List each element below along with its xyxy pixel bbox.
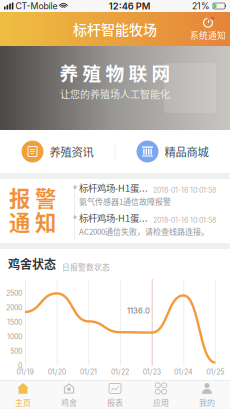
staticText: 主页 (15, 396, 31, 408)
staticText: 标杆智能牧场 (73, 19, 157, 39)
staticText: AC2000通信失败，请检查线路连接。 (79, 225, 209, 237)
staticText: 鸡舍 (61, 396, 77, 408)
staticText: 2018-01-16 10:01:58 (153, 186, 216, 194)
staticText: 01/22 (111, 368, 129, 376)
staticText: 500 (10, 347, 22, 355)
staticText: 养 殖 物 联 网 (59, 59, 170, 86)
staticText: 鸡舍状态 (8, 255, 56, 272)
staticText: 01/20 (48, 368, 66, 376)
staticText: 让您的养殖场人工智能化 (60, 87, 170, 101)
staticText: 系统通知 (190, 29, 226, 41)
staticText: 精品商城 (164, 143, 208, 160)
staticText: 12:46 PM (109, 0, 151, 12)
staticText: 01/21 (80, 368, 97, 376)
staticText: 1000 (7, 332, 22, 341)
staticText: 01/19 (16, 368, 33, 376)
button[interactable]: 鸡舍 (46, 380, 92, 409)
button[interactable]: 系统通知 (188, 12, 228, 46)
button[interactable]: 主页 (0, 380, 46, 409)
button[interactable]: 精品商城 (115, 130, 230, 173)
staticText: 2018-01-16 10:01:58 (153, 216, 216, 224)
staticText: 01/25 (206, 368, 224, 376)
button[interactable]: 应用 (138, 380, 184, 409)
staticText: 21% (192, 1, 210, 11)
staticText: 应用 (153, 396, 169, 408)
button[interactable]: 标杆鸡场-H1蛋... (71, 211, 230, 241)
staticText: 1500 (7, 318, 22, 326)
button[interactable]: 报表 (92, 380, 138, 409)
staticText: 01/24 (174, 368, 193, 376)
staticText: 通知 (9, 206, 56, 237)
staticText: 2500 (6, 289, 22, 297)
staticText: 日报警数状态 (62, 261, 110, 272)
button[interactable]: 养殖资讯 (0, 130, 115, 173)
staticText: 氨气传感器1通信故障报警 (79, 195, 171, 207)
staticText: 标杆鸡场-H1蛋... (79, 211, 148, 224)
staticText: 1136.0 (127, 306, 150, 315)
staticText: 标杆鸡场-H1蛋... (79, 181, 148, 194)
staticText: 01/23 (143, 368, 161, 376)
staticText: 2000 (6, 303, 22, 312)
staticText: 养殖资讯 (49, 143, 93, 160)
staticText: 0 (18, 361, 22, 370)
staticText: 我的 (199, 396, 215, 408)
button[interactable]: 标杆鸡场-H1蛋... (71, 181, 230, 211)
button[interactable]: 我的 (184, 380, 230, 409)
staticText: CT-Mobile (13, 1, 57, 11)
staticText: 报警 (9, 182, 56, 213)
staticText: 报表 (107, 396, 123, 408)
